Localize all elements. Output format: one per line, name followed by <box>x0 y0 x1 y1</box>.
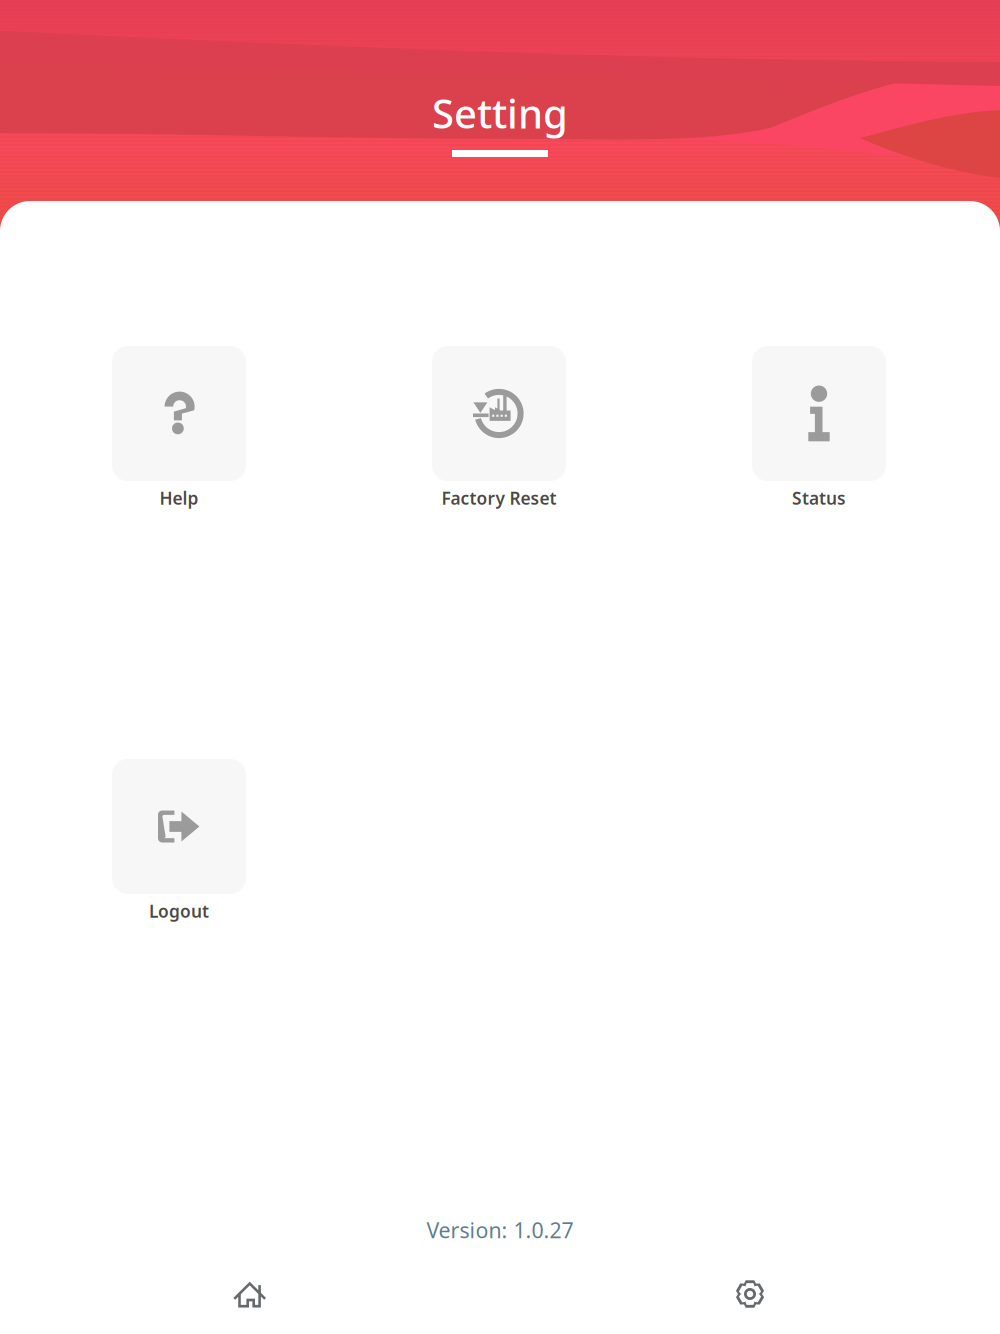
button[interactable]: Help <box>79 346 279 510</box>
button[interactable]: Home <box>195 1259 305 1329</box>
staticText: Factory Reset <box>441 486 556 509</box>
button[interactable]: Logout <box>79 759 279 923</box>
button[interactable]: Factory Reset <box>399 346 599 510</box>
staticText: Logout <box>149 899 209 922</box>
staticText: Help <box>159 486 198 509</box>
staticText: Setting <box>432 86 568 139</box>
staticText: Version: 1.0.27 <box>426 1216 573 1244</box>
button[interactable]: Status <box>719 346 919 510</box>
staticText: Status <box>792 486 846 509</box>
button[interactable]: Settings <box>695 1259 805 1329</box>
